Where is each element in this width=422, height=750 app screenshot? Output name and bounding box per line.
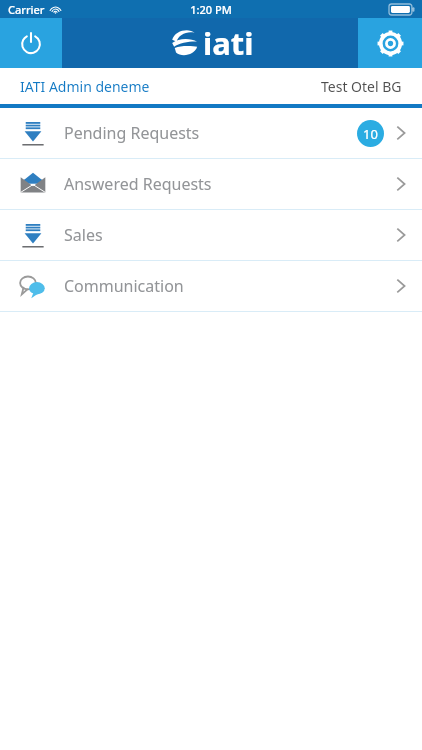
button[interactable]: Communication — [0, 261, 422, 311]
staticText: 1:20 PM — [190, 2, 232, 17]
staticText: Test Otel BG — [321, 77, 402, 96]
button[interactable]: Answered Requests — [0, 159, 422, 209]
staticText: iati — [203, 22, 254, 64]
button[interactable]: Logout — [0, 18, 62, 68]
staticText: IATI Admin deneme — [20, 77, 150, 96]
staticText: Pending Requests — [64, 122, 200, 144]
button[interactable]: Settings — [358, 18, 422, 68]
staticText: 10 — [363, 125, 378, 143]
staticText: Sales — [64, 224, 103, 246]
staticText: Communication — [64, 275, 184, 297]
button[interactable]: Pending Requests — [0, 108, 422, 158]
staticText: Carrier — [8, 2, 45, 17]
staticText: Answered Requests — [64, 173, 212, 195]
button[interactable]: Sales — [0, 210, 422, 260]
